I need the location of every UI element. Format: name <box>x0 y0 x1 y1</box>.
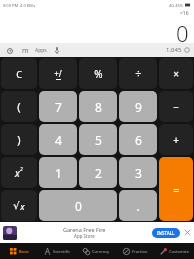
button[interactable]: ( <box>1 91 37 122</box>
staticText: √ <box>13 200 20 212</box>
button[interactable]: Currency <box>77 243 116 259</box>
staticText: ÷ <box>135 66 142 81</box>
staticText: 2 <box>20 166 23 173</box>
button[interactable]: Garena Free Fire <box>0 222 194 243</box>
button[interactable]: plus minus <box>39 58 77 89</box>
staticText: 4 <box>55 132 62 148</box>
staticText: 9:00 PM 4.0 KB/s <box>3 3 36 8</box>
staticText: + <box>173 133 179 147</box>
button[interactable]: 2 <box>79 157 117 188</box>
staticText: 0 <box>176 18 189 43</box>
staticText: C <box>16 68 22 80</box>
button[interactable]: Scientific <box>38 243 77 259</box>
button[interactable]: 4 <box>39 124 77 155</box>
staticText: x <box>20 200 25 212</box>
button[interactable]: Basic <box>0 243 38 259</box>
button[interactable]: . <box>119 190 157 221</box>
button[interactable]: + <box>159 124 193 155</box>
staticText: 0 <box>75 198 82 214</box>
staticText: Scientific <box>53 249 71 254</box>
staticText: Garena Free Fire <box>63 226 106 233</box>
staticText: − <box>173 100 179 114</box>
button[interactable]: 3 <box>119 157 157 188</box>
staticText: 6 <box>135 132 142 148</box>
staticText: =16 <box>180 10 189 17</box>
staticText: 5 <box>95 132 102 148</box>
staticText: . <box>136 198 140 214</box>
button[interactable]: Customize <box>155 243 194 259</box>
staticText: 7 <box>55 99 62 115</box>
staticText: Basic <box>19 249 29 254</box>
staticText: App Store <box>74 233 95 239</box>
button[interactable]: Apps <box>35 45 47 56</box>
staticText: ) <box>17 132 21 147</box>
button[interactable]: ÷ <box>119 58 157 89</box>
staticText: Currency <box>92 249 110 254</box>
button[interactable]: % <box>79 58 117 89</box>
button[interactable]: 1 <box>39 157 77 188</box>
staticText: 3 <box>135 165 142 181</box>
staticText: INSTALL <box>157 230 175 236</box>
staticText: = <box>173 182 180 197</box>
staticText: m <box>22 46 29 56</box>
button[interactable]: m <box>20 45 31 56</box>
button[interactable]: History <box>4 45 15 56</box>
button[interactable]: 0 <box>39 190 117 221</box>
button[interactable]: = <box>159 157 193 221</box>
staticText: 1 <box>55 165 62 181</box>
staticText: Apps <box>35 47 47 54</box>
button[interactable]: INSTALL <box>157 230 175 236</box>
button[interactable]: Voice input <box>51 45 62 56</box>
staticText: % <box>94 67 103 81</box>
button[interactable]: C <box>1 58 37 89</box>
staticText: 9 <box>135 99 142 115</box>
button[interactable]: Fraction <box>116 243 155 259</box>
staticText: 2 <box>95 165 102 181</box>
button[interactable]: square root <box>1 190 37 221</box>
button[interactable]: Close ad <box>183 228 192 237</box>
button[interactable]: 8 <box>79 91 117 122</box>
staticText: Fraction <box>132 249 148 254</box>
staticText: x <box>15 166 20 180</box>
button[interactable]: 6 <box>119 124 157 155</box>
button[interactable]: × <box>159 58 193 89</box>
button[interactable]: 9 <box>119 91 157 122</box>
button[interactable]: 5 <box>79 124 117 155</box>
button[interactable]: 7 <box>39 91 77 122</box>
button[interactable]: x squared <box>1 157 37 188</box>
staticText: 4G 45% <box>169 3 184 8</box>
staticText: ( <box>17 99 21 114</box>
staticText: × <box>173 67 179 81</box>
staticText: 8 <box>95 99 102 115</box>
button[interactable]: − <box>159 91 193 122</box>
staticText: Customize <box>169 249 190 254</box>
button[interactable]: ) <box>1 124 37 155</box>
staticText: +/ <box>54 68 62 79</box>
staticText: 1,045 <box>166 46 182 54</box>
